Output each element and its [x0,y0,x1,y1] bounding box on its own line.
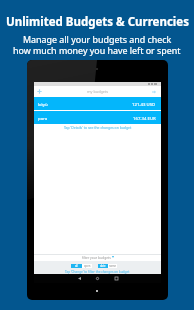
staticText: how much money you have left or spent [13,44,181,56]
button[interactable]: open [82,264,92,268]
staticText: para [38,115,48,121]
button[interactable]: Back [74,274,84,283]
staticText: Tap 'Details' to see the changes on budg… [64,125,132,130]
staticText: köyü [38,101,48,107]
staticText: Unlimited Budgets & Currencies [6,14,189,30]
button[interactable]: para [34,111,161,124]
staticText: Tap 'Change' to filter the changes on bu… [65,270,130,274]
button[interactable]: date [98,264,108,268]
staticText: open [84,264,91,268]
staticText: filter your budgets [82,255,111,259]
button[interactable]: Add budget [34,86,45,97]
staticText: 121.43 USD [132,101,156,107]
button[interactable]: all [71,264,82,268]
staticText: all [75,264,78,268]
button[interactable]: Sort budgets [147,86,161,97]
staticText: date [100,264,106,268]
staticText: 167.34 EUR [133,115,156,121]
staticText: name [109,264,116,268]
button[interactable]: Home [92,274,102,283]
button[interactable]: Recent apps [111,274,121,283]
staticText: my budgets [87,89,109,94]
button[interactable]: filter your budgets [82,255,114,259]
button[interactable]: köyü [34,97,161,110]
button[interactable]: name [108,264,117,268]
staticText: Manage all your budgets and check [23,33,172,45]
